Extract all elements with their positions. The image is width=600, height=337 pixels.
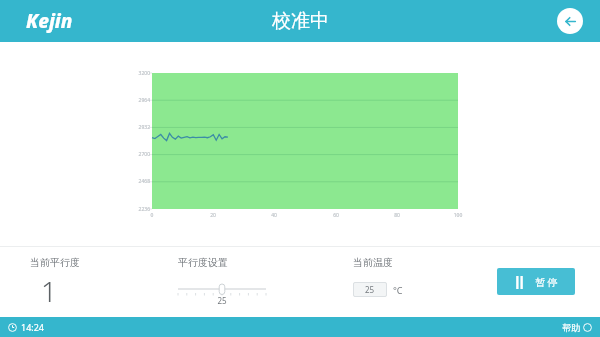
staticText: 25 xyxy=(365,284,375,295)
staticText: 2468 xyxy=(127,178,150,185)
button[interactable]: 暂 停 xyxy=(497,268,575,295)
staticText: 暂 停 xyxy=(535,275,558,289)
staticText: 20 xyxy=(204,212,222,219)
staticText: 100 xyxy=(449,212,467,219)
button[interactable]: Back xyxy=(557,8,583,34)
staticText: 2932 xyxy=(127,124,150,131)
other: Help xyxy=(583,323,592,332)
staticText: 80 xyxy=(388,212,406,219)
staticText: 1 xyxy=(41,272,57,310)
button[interactable]: Kejin xyxy=(26,8,73,34)
staticText: 40 xyxy=(265,212,283,219)
staticText: 2700 xyxy=(127,151,150,158)
staticText: 14:24 xyxy=(21,321,45,333)
staticText: 25 xyxy=(217,295,227,306)
staticText: 2964 xyxy=(127,97,150,104)
button[interactable]: 25 xyxy=(178,284,266,308)
button[interactable]: 25 xyxy=(353,282,387,297)
staticText: 平行度设置 xyxy=(178,256,228,269)
staticText: 2236 xyxy=(127,206,150,213)
staticText: Kejin xyxy=(26,8,73,34)
staticText: 0 xyxy=(143,212,161,219)
button[interactable]: 帮助 xyxy=(562,322,592,333)
staticText: 3200 xyxy=(127,70,150,77)
staticText: °C xyxy=(393,284,403,296)
button[interactable]: Clock xyxy=(8,321,45,333)
staticText: 当前温度 xyxy=(353,256,393,269)
staticText: 帮助 xyxy=(562,322,580,333)
staticText: 校准中 xyxy=(272,9,329,33)
staticText: 60 xyxy=(327,212,345,219)
staticText: 当前平行度 xyxy=(30,256,80,269)
other: Clock xyxy=(8,323,17,332)
